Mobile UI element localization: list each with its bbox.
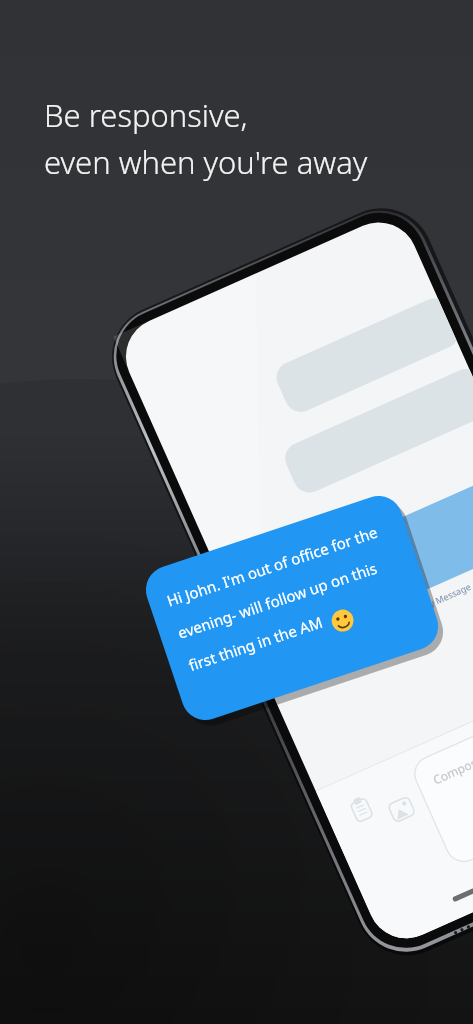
button[interactable]: Be responsive, even when you're away bbox=[0, 0, 473, 1024]
